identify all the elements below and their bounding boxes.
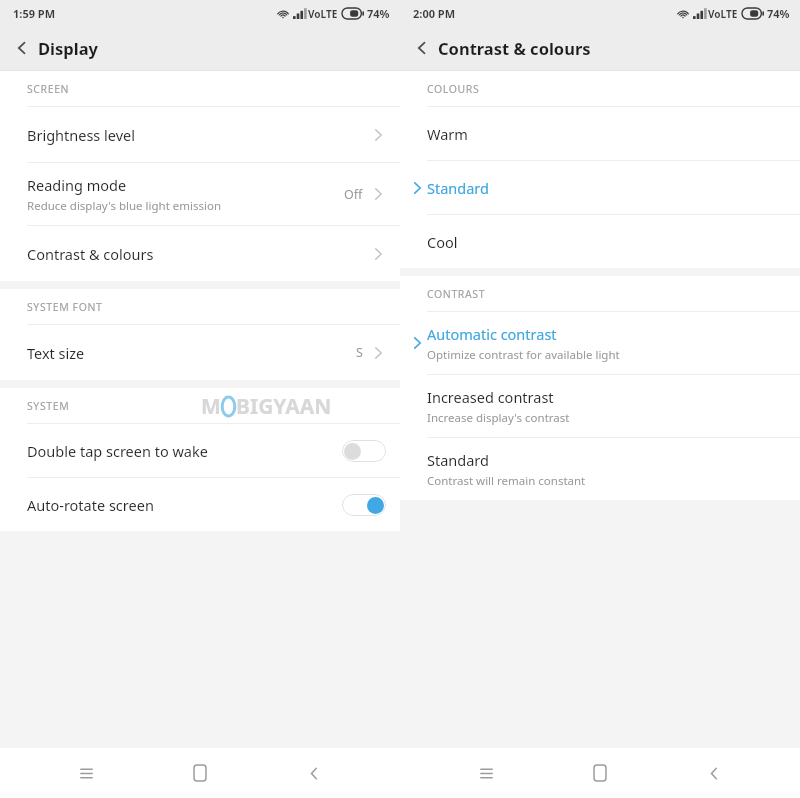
staticText: Double tap screen to wake xyxy=(27,441,342,461)
staticText: CONTRAST xyxy=(427,287,486,301)
staticText: Contrast & colours xyxy=(27,244,154,264)
staticText: 74% xyxy=(767,6,790,21)
staticText: Standard xyxy=(427,178,489,198)
button[interactable]: Cool xyxy=(400,215,800,268)
staticText: BIGYAAN xyxy=(236,392,332,421)
staticText: 2:00 PM xyxy=(413,6,456,21)
button[interactable]: Auto-rotate screen xyxy=(0,478,400,531)
staticText: 74% xyxy=(367,6,390,21)
staticText: Contrast & colours xyxy=(438,37,591,59)
button[interactable]: Back xyxy=(0,26,44,70)
staticText: Warm xyxy=(427,124,468,144)
button[interactable]: Back xyxy=(286,748,342,798)
staticText: Auto-rotate screen xyxy=(27,495,342,515)
staticText: Automatic contrast xyxy=(427,324,557,344)
button[interactable]: Automatic contrast xyxy=(400,312,800,374)
staticText: Cool xyxy=(427,232,458,252)
staticText: SCREEN xyxy=(27,82,70,96)
button[interactable]: Home xyxy=(572,748,628,798)
staticText: Contrast will remain constant xyxy=(427,473,586,489)
button[interactable]: Warm xyxy=(400,107,800,160)
staticText: Reduce display's blue light emission xyxy=(27,198,222,214)
button[interactable]: Recents xyxy=(58,748,114,798)
button[interactable]: Recents xyxy=(458,748,514,798)
staticText: Increased contrast xyxy=(427,387,554,407)
button[interactable]: Reading mode xyxy=(0,163,400,225)
button[interactable]: Standard xyxy=(400,438,800,500)
staticText: Brightness level xyxy=(27,125,135,145)
button[interactable]: Brightness level xyxy=(0,107,400,162)
staticText: Display xyxy=(38,37,98,59)
staticText: VoLTE xyxy=(308,7,338,21)
staticText: SYSTEM xyxy=(27,399,70,413)
staticText: Standard xyxy=(427,450,489,470)
staticText: Optimize contrast for available light xyxy=(427,347,620,363)
button[interactable]: Standard xyxy=(400,161,800,214)
staticText: Reading mode xyxy=(27,175,127,195)
staticText: Text size xyxy=(27,343,85,363)
button[interactable]: Contrast & colours xyxy=(0,226,400,281)
staticText: Off xyxy=(344,186,363,203)
button[interactable]: Back xyxy=(400,26,444,70)
staticText: SYSTEM FONT xyxy=(27,300,103,314)
staticText: 1:59 PM xyxy=(13,6,56,21)
staticText: M xyxy=(201,392,221,421)
button[interactable]: Double tap screen to wake xyxy=(0,424,400,477)
button[interactable]: Back xyxy=(686,748,742,798)
staticText: COLOURS xyxy=(427,82,480,96)
staticText: Increase display's contrast xyxy=(427,410,570,426)
button[interactable]: Increased contrast xyxy=(400,375,800,437)
staticText: S xyxy=(356,344,363,361)
button[interactable]: Home xyxy=(172,748,228,798)
staticText: VoLTE xyxy=(708,7,738,21)
button[interactable]: Text size xyxy=(0,325,400,380)
